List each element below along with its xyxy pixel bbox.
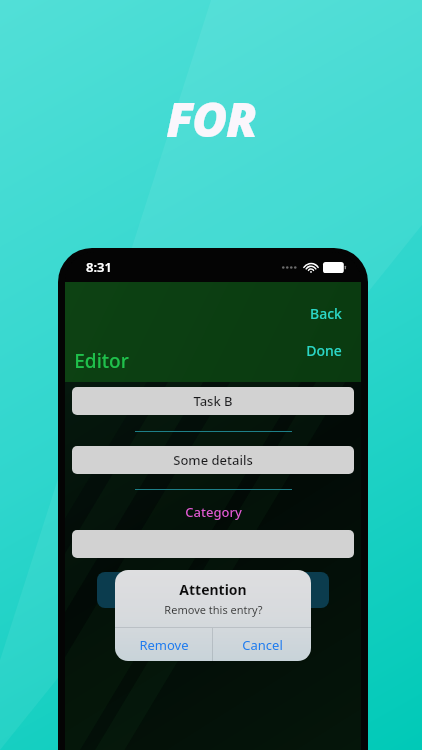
staticText: Task B [193, 392, 233, 410]
button[interactable]: Task B [72, 387, 354, 415]
staticText: Done [306, 341, 342, 360]
staticText: 8:31 [86, 258, 112, 276]
staticText: Editor [74, 348, 129, 374]
staticText: Attention [179, 580, 247, 599]
staticText: Some details [173, 451, 253, 469]
staticText: Back [310, 304, 342, 323]
button[interactable]: Remove [115, 628, 212, 661]
button[interactable]: Back [308, 301, 344, 326]
button[interactable] [72, 530, 354, 558]
button[interactable]: Some details [72, 446, 354, 474]
staticText: Category [185, 503, 242, 521]
button[interactable]: Cancel [213, 628, 311, 661]
staticText: FOR [166, 86, 256, 151]
staticText: Remove this entry? [164, 602, 263, 617]
button[interactable]: Delete entry [97, 572, 329, 608]
button[interactable]: Done [304, 338, 344, 363]
staticText: Cancel [242, 636, 283, 654]
staticText: Remove [139, 636, 189, 654]
